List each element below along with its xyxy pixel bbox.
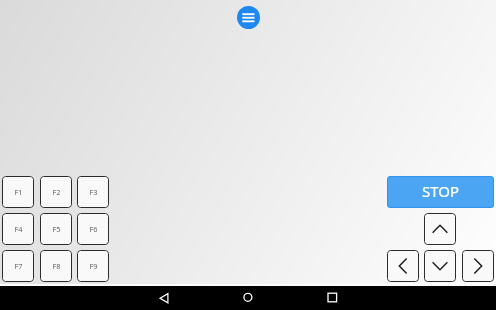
button[interactable]: F4	[2, 213, 34, 245]
staticText: F6	[89, 224, 98, 234]
staticText: F4	[14, 224, 23, 234]
button[interactable]: Up	[424, 213, 456, 245]
button[interactable]: Home	[230, 286, 266, 310]
staticText: F8	[52, 261, 61, 271]
button[interactable]: F6	[77, 213, 109, 245]
button[interactable]: F5	[40, 213, 72, 245]
button[interactable]: F1	[2, 176, 34, 208]
button[interactable]: F3	[77, 176, 109, 208]
button[interactable]: Recent apps	[314, 286, 350, 310]
button[interactable]: F7	[2, 250, 34, 282]
button[interactable]: F2	[40, 176, 72, 208]
staticText: F1	[14, 187, 23, 197]
staticText: F2	[52, 187, 61, 197]
button[interactable]: STOP	[387, 176, 494, 208]
button[interactable]: Left	[387, 250, 419, 282]
button[interactable]: Right	[462, 250, 494, 282]
button[interactable]: F8	[40, 250, 72, 282]
staticText: STOP	[422, 181, 460, 201]
button[interactable]: Back	[146, 286, 182, 310]
staticText: F9	[89, 261, 98, 271]
staticText: F3	[89, 187, 98, 197]
staticText: F5	[52, 224, 61, 234]
button[interactable]: Down	[424, 250, 456, 282]
staticText: F7	[14, 261, 23, 271]
button[interactable]: Menu	[237, 6, 260, 29]
button[interactable]: F9	[77, 250, 109, 282]
